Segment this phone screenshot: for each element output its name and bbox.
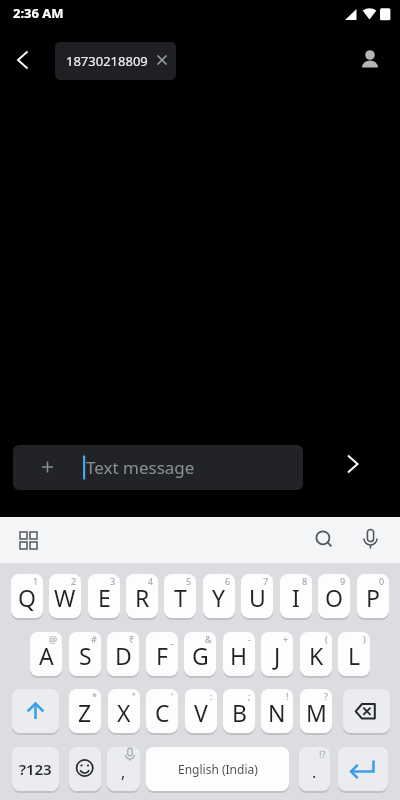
staticText: T (174, 582, 187, 613)
button[interactable]: S (69, 632, 101, 676)
button[interactable] (12, 689, 59, 733)
staticText: _ (170, 633, 174, 645)
button[interactable]: I (280, 574, 312, 618)
staticText: 6 (225, 575, 231, 587)
staticText: 5 (186, 575, 192, 587)
button[interactable]: V (185, 689, 217, 733)
button[interactable] (334, 446, 370, 482)
staticText: X (117, 697, 131, 728)
staticText: B (232, 697, 247, 728)
staticText: V (194, 697, 208, 728)
staticText: & (205, 633, 212, 645)
staticText: 9 (340, 575, 346, 587)
button[interactable] (6, 44, 40, 76)
staticText: P (366, 582, 380, 613)
staticText: Q (18, 582, 36, 613)
staticText: - (248, 633, 251, 645)
staticText: ! (286, 690, 289, 702)
button[interactable]: B (223, 689, 255, 733)
staticText: S (79, 640, 92, 671)
button[interactable]: H (223, 632, 255, 676)
staticText: O (325, 582, 343, 613)
staticText: !? (319, 748, 326, 760)
button[interactable]: X (108, 689, 140, 733)
staticText: * (92, 690, 97, 702)
button[interactable] (302, 517, 344, 563)
staticText: R (135, 582, 150, 613)
staticText: ?123 (19, 759, 52, 779)
staticText: 2:36 AM (13, 4, 64, 22)
button[interactable] (8, 517, 50, 563)
staticText: K (309, 640, 324, 671)
button[interactable]: C (146, 689, 178, 733)
button[interactable]: R (126, 574, 158, 618)
staticText: 1 (33, 575, 39, 587)
staticText: D (115, 640, 132, 671)
staticText: " (132, 690, 136, 702)
staticText: E (98, 582, 111, 613)
staticText: C (155, 697, 170, 728)
button[interactable]: K (300, 632, 332, 676)
button[interactable]: , (107, 747, 140, 791)
button[interactable]: D (107, 632, 139, 676)
button[interactable]: O (318, 574, 350, 618)
button[interactable] (349, 517, 391, 563)
button[interactable]: P (357, 574, 389, 618)
staticText: I (292, 582, 300, 613)
button[interactable]: F (146, 632, 178, 676)
staticText: : (210, 690, 213, 702)
button[interactable]: Text message (13, 445, 303, 490)
staticText: . (312, 761, 317, 783)
staticText: ₹ (129, 633, 135, 645)
button[interactable]: ?123 (12, 747, 59, 791)
staticText: 0 (379, 575, 385, 587)
button[interactable] (338, 747, 388, 791)
button[interactable]: J (261, 632, 293, 676)
staticText: 18730218809 (66, 52, 148, 70)
button[interactable]: G (184, 632, 216, 676)
staticText: 8 (302, 575, 308, 587)
button[interactable]: 18730218809 (55, 42, 176, 80)
button[interactable] (69, 747, 101, 791)
button[interactable]: U (241, 574, 273, 618)
staticText: 4 (148, 575, 154, 587)
staticText: 2 (71, 575, 77, 587)
staticText: ' (171, 690, 174, 702)
staticText: A (39, 640, 54, 671)
button[interactable]: M (300, 689, 332, 733)
staticText: @ (49, 633, 58, 645)
staticText: U (249, 582, 266, 613)
button[interactable]: Z (69, 689, 101, 733)
staticText: Z (78, 697, 92, 728)
staticText: # (91, 633, 97, 645)
staticText: Text message (86, 456, 195, 479)
button[interactable]: L (338, 632, 370, 676)
button[interactable]: English (India) (146, 747, 289, 791)
staticText: F (156, 640, 168, 671)
staticText: W (54, 582, 76, 613)
button[interactable] (352, 42, 388, 78)
staticText: + (283, 633, 289, 645)
button[interactable]: Q (11, 574, 43, 618)
staticText: 3 (110, 575, 116, 587)
staticText: Y (212, 582, 226, 613)
staticText: ( (325, 633, 328, 645)
button[interactable] (343, 689, 390, 733)
staticText: J (274, 640, 281, 671)
staticText: M (306, 697, 327, 728)
button[interactable]: T (164, 574, 196, 618)
button[interactable]: A (30, 632, 62, 676)
staticText: ? (324, 690, 328, 702)
staticText: ) (363, 633, 366, 645)
button[interactable]: N (261, 689, 293, 733)
button[interactable]: . (299, 747, 330, 791)
staticText: , (121, 761, 126, 783)
button[interactable]: E (88, 574, 120, 618)
staticText: G (192, 640, 209, 671)
staticText: H (230, 640, 248, 671)
button[interactable]: W (49, 574, 81, 618)
staticText: L (348, 640, 361, 671)
staticText: 7 (263, 575, 269, 587)
button[interactable]: Y (203, 574, 235, 618)
staticText: N (268, 697, 286, 728)
